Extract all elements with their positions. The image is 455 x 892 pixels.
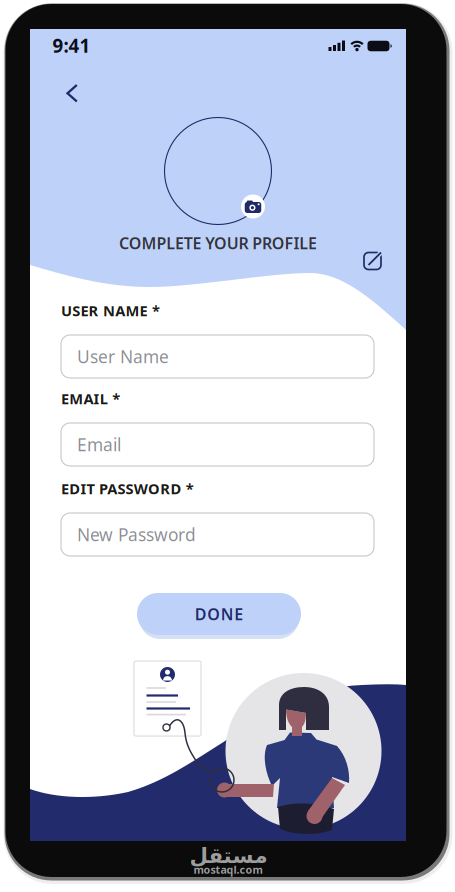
staticText: COMPLETE YOUR PROFILE — [119, 232, 317, 254]
button[interactable]: DONE — [137, 593, 301, 635]
staticText: User Name — [77, 345, 169, 368]
button[interactable]: Add photo — [241, 194, 265, 218]
staticText: New Password — [77, 523, 196, 546]
button[interactable]: Email — [61, 423, 374, 466]
button[interactable]: New Password — [61, 513, 374, 556]
staticText: مستقل — [189, 843, 267, 868]
button[interactable]: User Name — [61, 335, 374, 378]
staticText: DONE — [195, 603, 243, 625]
staticText: USER NAME * — [61, 301, 160, 320]
button[interactable]: Edit — [362, 249, 384, 271]
staticText: mostaql.com — [193, 862, 262, 877]
staticText: Email — [77, 433, 121, 456]
button[interactable]: Back — [60, 83, 84, 103]
staticText: 9:41 — [52, 33, 90, 58]
staticText: EDIT PASSWORD * — [61, 479, 194, 498]
staticText: EMAIL * — [61, 389, 120, 408]
